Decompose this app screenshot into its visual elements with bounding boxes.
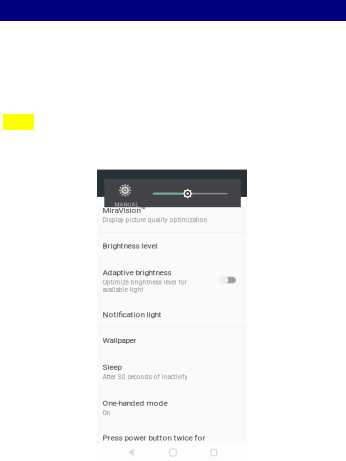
button[interactable]: Wallpaper [97,327,247,353]
button[interactable]: Notification light [97,302,247,327]
button[interactable]: Adaptive brightness toggle [219,274,237,285]
button[interactable]: Brightness level [97,232,247,258]
button[interactable]: Sleep [97,353,247,389]
staticText: Notification light [102,310,161,319]
staticText: MANUAL [115,201,139,208]
button[interactable]: Adaptive brightness [97,258,247,302]
button[interactable]: One-handed mode [97,389,247,425]
staticText: MiraVision™ [102,205,145,215]
staticText: Wallpaper [102,336,136,345]
staticText: One-handed mode [102,398,167,408]
staticText: Brightness level [102,241,157,251]
staticText: Sleep [102,362,121,372]
button[interactable]: MiraVision™ [97,204,247,232]
staticText: Display picture quality optimization [102,216,207,224]
staticText: After 30 seconds of inactivity [102,373,187,381]
staticText: On [102,409,110,417]
staticText: Adaptive brightness [102,268,171,277]
button[interactable]: Recent apps [205,444,223,461]
staticText: Optimize brightness level for [102,279,186,286]
button[interactable]: Back [122,444,140,461]
staticText: available light [102,286,143,294]
staticText: Press power button twice for [102,433,205,443]
button[interactable]: Press power button twice for [97,425,247,444]
button[interactable]: Home [164,444,182,461]
